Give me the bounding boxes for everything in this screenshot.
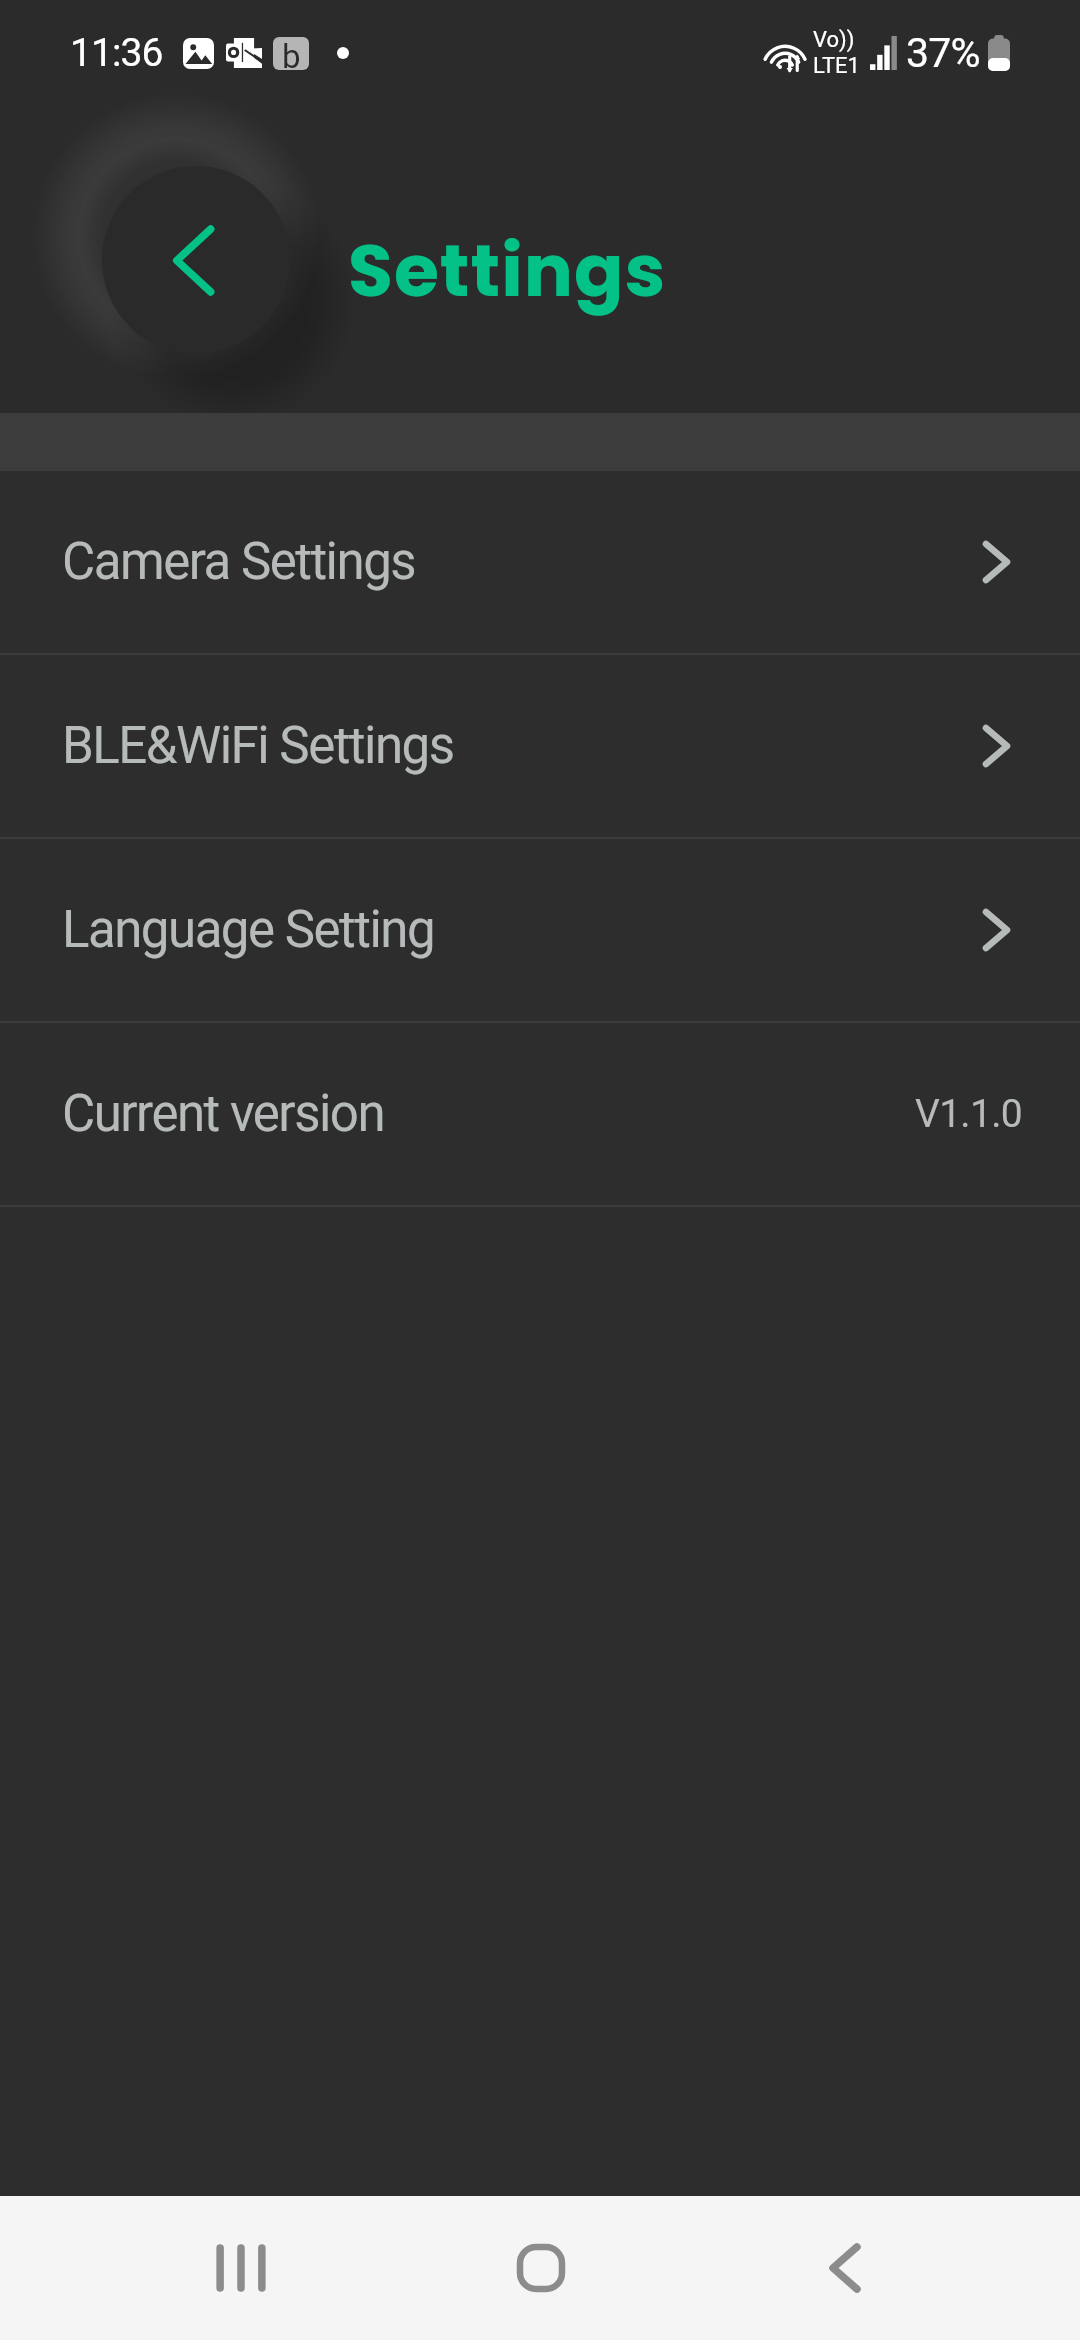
staticText: Settings (348, 219, 667, 321)
button[interactable]: Back (102, 166, 290, 354)
staticText: 37% (906, 29, 980, 77)
button[interactable]: Home (451, 2196, 631, 2340)
staticText: LTE1 (813, 53, 860, 79)
staticText: BLE&WiFi Settings (62, 716, 454, 776)
button[interactable]: Language Setting (0, 839, 1080, 1021)
staticText: Camera Settings (62, 532, 416, 592)
staticText: V1.1.0 (915, 1091, 1022, 1137)
staticText: 11:36 (70, 30, 163, 76)
button[interactable]: BLE&WiFi Settings (0, 655, 1080, 837)
button[interactable]: Recent apps (151, 2196, 331, 2340)
staticText: Current version (62, 1084, 385, 1144)
button[interactable]: Back (755, 2196, 935, 2340)
button[interactable]: Camera Settings (0, 471, 1080, 653)
staticText: Language Setting (62, 900, 435, 960)
staticText: Vo)) (813, 27, 855, 53)
staticText: b (282, 37, 301, 70)
